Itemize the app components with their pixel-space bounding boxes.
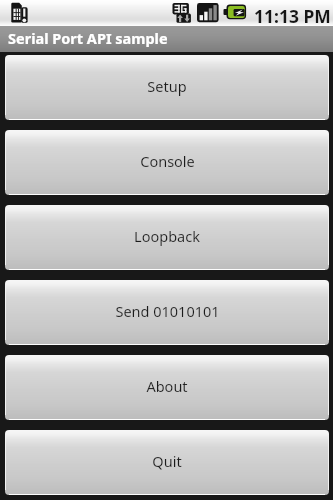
button[interactable]: Loopback <box>5 205 329 270</box>
staticText: Serial Port API sample <box>8 28 168 48</box>
staticText: Loopback <box>134 226 200 246</box>
button[interactable]: Send 01010101 <box>5 280 329 345</box>
staticText: Quit <box>152 451 182 471</box>
staticText: Setup <box>147 76 187 96</box>
button[interactable]: About <box>5 355 329 420</box>
staticText: About <box>146 376 188 396</box>
button[interactable]: Console <box>5 130 329 195</box>
staticText: 11:13 PM <box>254 4 331 28</box>
button[interactable]: Quit <box>5 430 329 495</box>
staticText: Console <box>140 151 195 171</box>
button[interactable]: Setup <box>5 55 329 120</box>
staticText: Send 01010101 <box>115 301 220 321</box>
